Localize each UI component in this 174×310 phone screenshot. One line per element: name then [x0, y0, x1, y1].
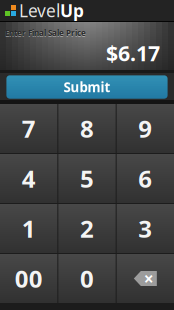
staticText: Enter Final Sale Price: [5, 28, 86, 38]
staticText: 2: [80, 213, 94, 244]
staticText: 0: [80, 263, 94, 294]
staticText: 7: [22, 113, 36, 144]
button[interactable]: 6: [117, 154, 174, 203]
staticText: 5: [80, 163, 94, 194]
staticText: Level: [19, 0, 60, 22]
staticText: $6.17: [106, 39, 160, 67]
staticText: 9: [138, 113, 152, 144]
button[interactable]: 00: [0, 254, 57, 303]
button[interactable]: Submit: [6, 75, 167, 98]
button[interactable]: 0: [58, 254, 116, 303]
staticText: 6: [138, 163, 152, 194]
button[interactable]: Delete: [117, 254, 174, 303]
staticText: ×: [144, 267, 154, 290]
staticText: 4: [22, 163, 36, 194]
staticText: 3: [138, 213, 152, 244]
button[interactable]: 2: [58, 204, 116, 253]
staticText: 00: [15, 263, 43, 294]
staticText: 1: [22, 213, 36, 244]
button[interactable]: 9: [117, 104, 174, 153]
staticText: Up: [60, 0, 84, 22]
staticText: Enter Final Sale Price: [5, 28, 86, 39]
button[interactable]: 4: [0, 154, 57, 203]
button[interactable]: 5: [58, 154, 116, 203]
staticText: 8: [80, 113, 94, 144]
button[interactable]: 7: [0, 104, 57, 153]
staticText: Submit: [63, 78, 110, 96]
button[interactable]: 1: [0, 204, 57, 253]
button[interactable]: 3: [117, 204, 174, 253]
button[interactable]: 8: [58, 104, 116, 153]
